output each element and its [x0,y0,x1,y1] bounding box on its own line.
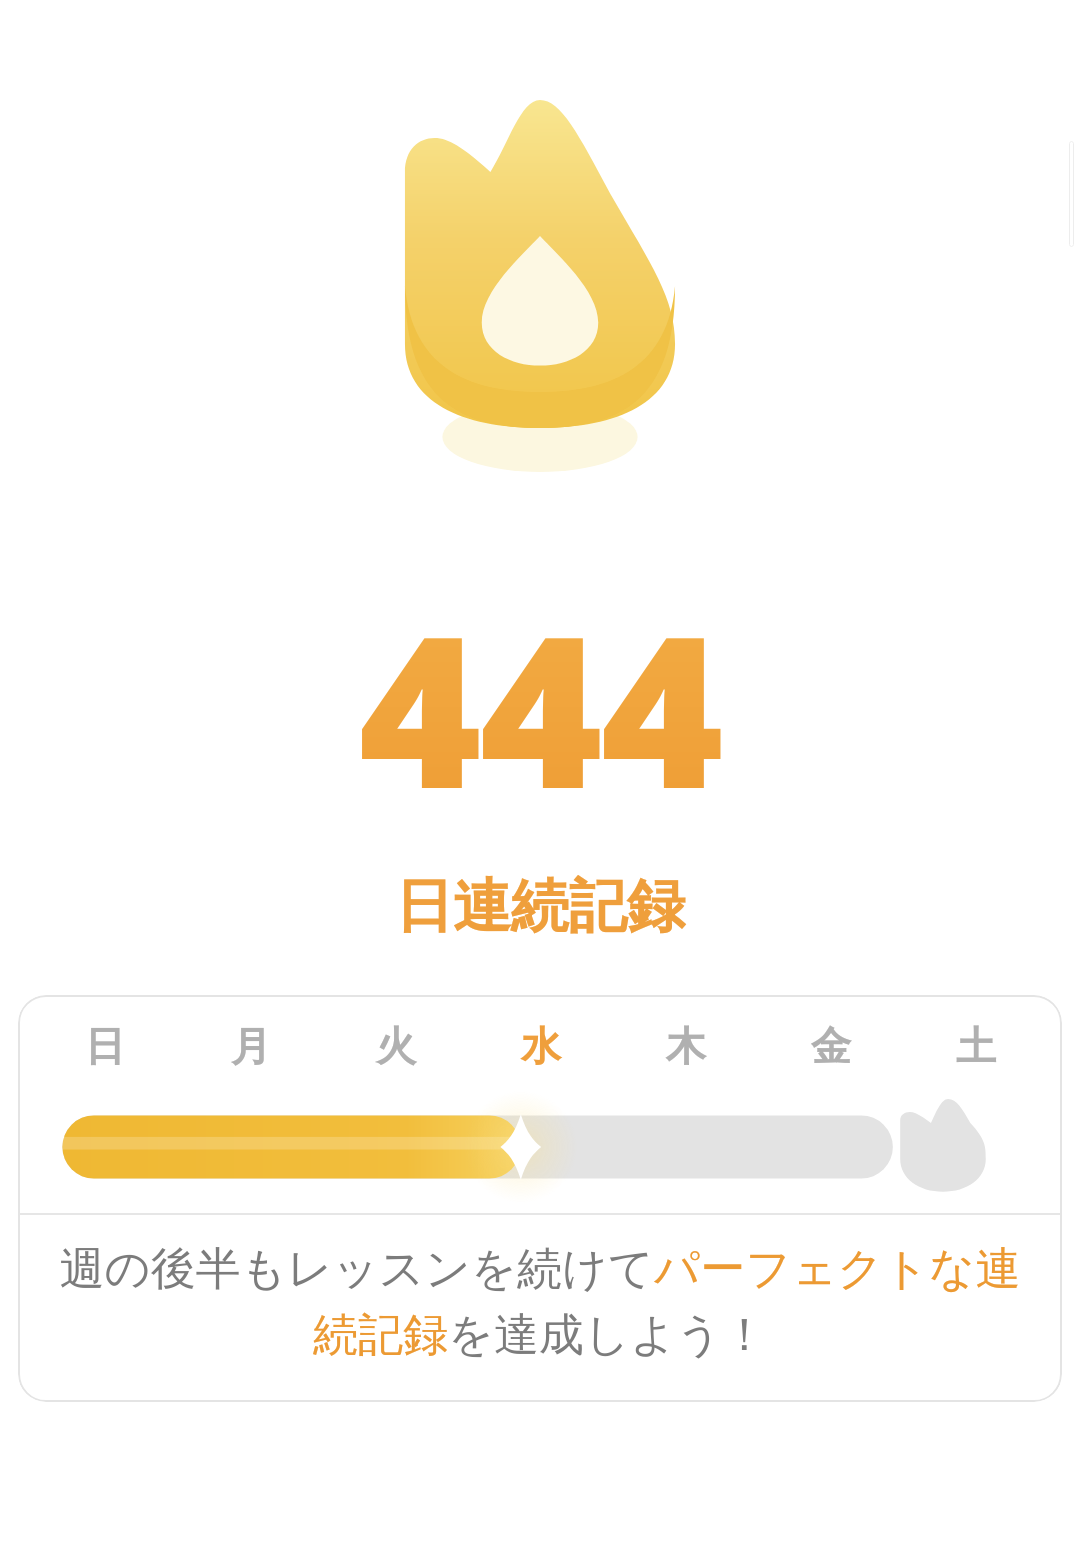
staticText: 木 [666,1021,706,1071]
staticText: 週の後半もレッスンを続けてパーフェクトな連続記録を達成しよう！ [46,1241,1034,1364]
staticText: 金 [811,1021,851,1071]
other: Streak flame [380,86,700,486]
staticText: 水 [521,1021,561,1071]
staticText: 444 [358,564,722,850]
staticText: 月 [231,1021,271,1071]
staticText: 日 [85,1021,125,1071]
staticText: 日連続記録 [395,870,685,943]
staticText: 土 [956,1021,996,1071]
staticText: 火 [376,1021,416,1071]
button[interactable]: 日 [18,995,1062,1402]
